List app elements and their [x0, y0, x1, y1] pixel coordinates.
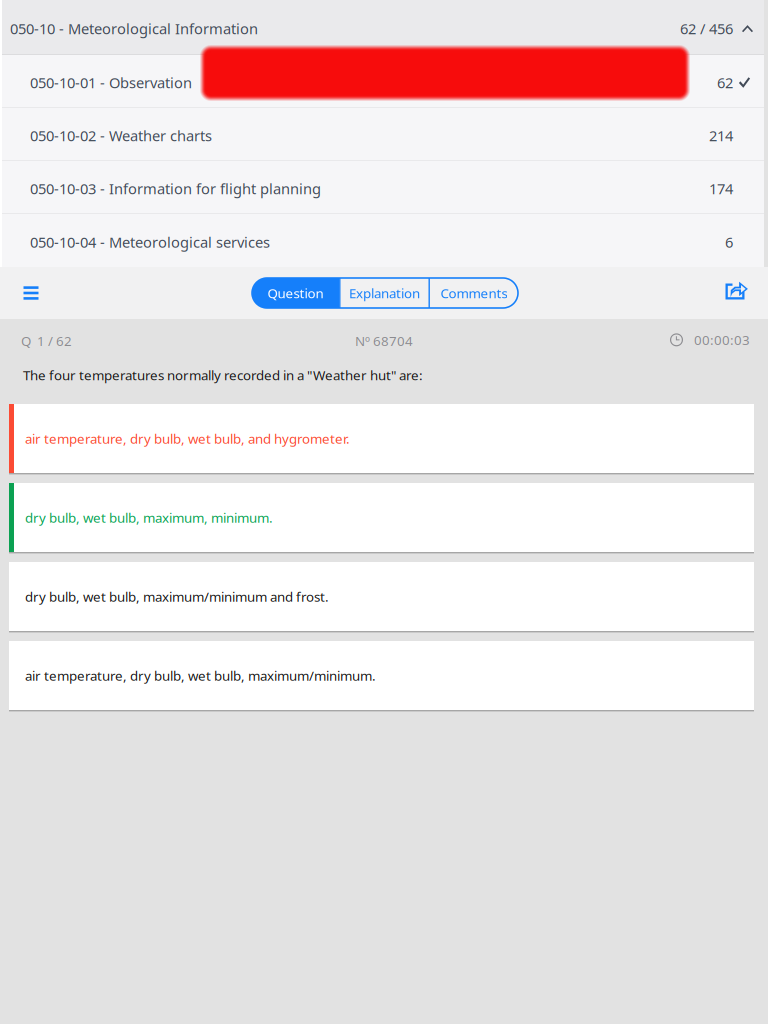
staticText: 214: [709, 126, 733, 145]
button[interactable]: Explanation: [340, 278, 428, 308]
staticText: 62: [717, 73, 733, 92]
button[interactable]: Comments: [430, 278, 518, 308]
staticText: Q 1 / 62: [21, 332, 72, 350]
staticText: 050-10-02 - Weather charts: [30, 126, 212, 145]
button[interactable]: 050-10-02 - Weather charts: [2, 108, 764, 161]
staticText: 050-10 - Meteorological Information: [10, 19, 258, 38]
staticText: Explanation: [349, 284, 420, 302]
staticText: 174: [709, 179, 733, 198]
staticText: 050-10-03 - Information for flight plann…: [30, 179, 321, 198]
button[interactable]: dry bulb, wet bulb, maximum/minimum and …: [9, 562, 754, 632]
staticText: Comments: [440, 284, 507, 302]
staticText: air temperature, dry bulb, wet bulb, max…: [25, 667, 376, 684]
staticText: 6: [725, 232, 733, 252]
staticText: air temperature, dry bulb, wet bulb, and…: [25, 430, 350, 447]
staticText: dry bulb, wet bulb, maximum, minimum.: [25, 509, 273, 526]
staticText: The four temperatures normally recorded …: [23, 366, 423, 384]
staticText: dry bulb, wet bulb, maximum/minimum and …: [25, 588, 329, 605]
staticText: 00:00:03: [694, 331, 750, 349]
staticText: Nº 68704: [355, 332, 413, 350]
button[interactable]: Share: [714, 268, 760, 312]
button[interactable]: Menu: [8, 271, 54, 315]
staticText: 050-10-01 - Observation: [30, 73, 192, 92]
staticText: 62 / 456: [680, 19, 733, 38]
button[interactable]: 050-10 - Meteorological Information: [2, 0, 764, 54]
button[interactable]: Question: [252, 278, 339, 308]
button[interactable]: air temperature, dry bulb, wet bulb, max…: [9, 641, 754, 711]
staticText: Question: [268, 284, 324, 302]
button[interactable]: air temperature, dry bulb, wet bulb, and…: [9, 404, 754, 474]
button[interactable]: dry bulb, wet bulb, maximum, minimum.: [9, 483, 754, 553]
button[interactable]: 050-10-01 - Observation: [2, 55, 764, 108]
button[interactable]: 050-10-04 - Meteorological services: [2, 214, 764, 267]
staticText: 050-10-04 - Meteorological services: [30, 232, 270, 252]
button[interactable]: 050-10-03 - Information for flight plann…: [2, 161, 764, 214]
